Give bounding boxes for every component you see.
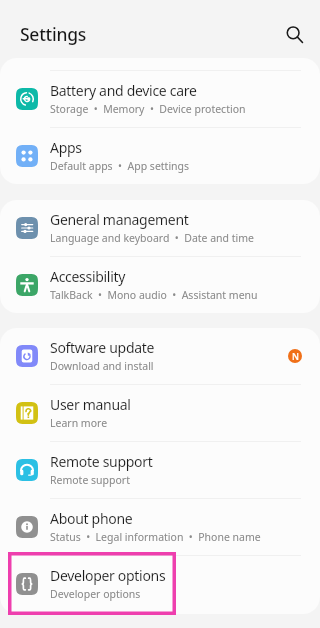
button[interactable]: Accessibility <box>0 257 320 313</box>
staticText: Settings <box>20 22 87 46</box>
button[interactable]: General management <box>0 200 320 256</box>
button[interactable]: About phone <box>0 499 320 555</box>
staticText: Default apps • App settings <box>50 159 190 173</box>
staticText: About phone <box>50 509 133 528</box>
staticText: User manual <box>50 395 131 414</box>
staticText: Remote support <box>50 452 153 471</box>
staticText: Apps <box>50 138 82 157</box>
staticText: Developer options <box>50 587 141 601</box>
button[interactable]: Developer options <box>0 556 320 612</box>
staticText: TalkBack • Mono audio • Assistant menu <box>50 288 258 302</box>
staticText: General management <box>50 210 189 229</box>
button[interactable]: Battery and device care <box>0 71 320 127</box>
staticText: Status • Legal information • Phone name <box>50 530 261 544</box>
staticText: Download and install <box>50 359 154 373</box>
staticText: Developer options <box>50 566 166 585</box>
button[interactable]: User manual <box>0 385 320 441</box>
staticText: Battery and device care <box>50 81 197 100</box>
staticText: Learn more <box>50 416 108 430</box>
staticText: Language and keyboard • Date and time <box>50 231 255 245</box>
button[interactable]: Search <box>274 14 314 54</box>
staticText: N <box>292 350 299 362</box>
button[interactable]: Remote support <box>0 442 320 498</box>
button[interactable]: Apps <box>0 128 320 184</box>
staticText: Remote support <box>50 473 130 487</box>
button[interactable]: Software update <box>0 328 320 384</box>
staticText: Accessibility <box>50 267 126 286</box>
staticText: Storage • Memory • Device protection <box>50 102 246 116</box>
staticText: Software update <box>50 338 155 357</box>
